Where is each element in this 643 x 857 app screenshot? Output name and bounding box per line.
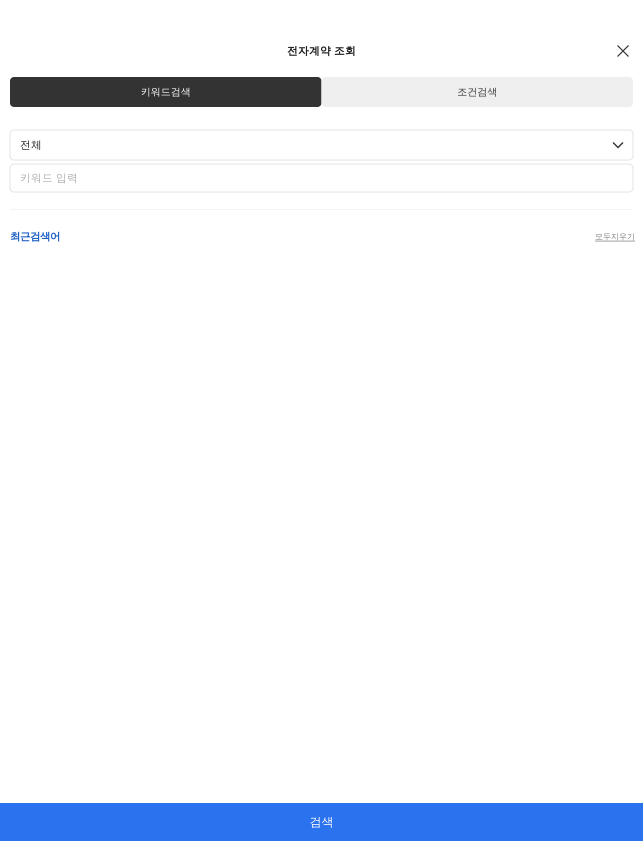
staticText: 조건검색 [457,86,497,98]
staticText: 전체 [20,138,42,152]
staticText: 최근검색어 [10,230,60,243]
button[interactable]: 모두지우기 [595,231,635,242]
button[interactable]: 키워드 입력 [10,164,633,192]
button[interactable]: 전체 [10,130,633,160]
staticText: 검색 [309,814,333,829]
button[interactable]: 조건검색 [321,77,633,107]
staticText: 전자계약 조회 [287,44,356,58]
staticText: 키워드 입력 [20,171,78,185]
button[interactable]: 검색 [0,803,643,841]
button[interactable]: 닫기 [610,38,636,64]
button[interactable]: 키워드검색 [10,77,321,107]
staticText: 모두지우기 [595,231,635,242]
staticText: 키워드검색 [141,86,191,98]
